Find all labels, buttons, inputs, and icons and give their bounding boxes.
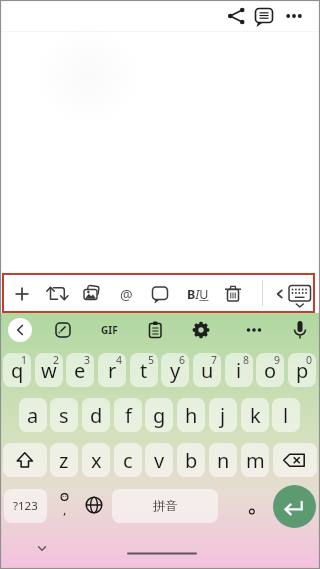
staticText: c <box>123 447 133 474</box>
button[interactable]: GIF <box>97 322 121 338</box>
button[interactable] <box>273 443 317 477</box>
button[interactable]: 拼音 <box>112 489 218 523</box>
button[interactable] <box>288 318 312 342</box>
button[interactable] <box>221 282 245 306</box>
button[interactable] <box>224 4 248 28</box>
staticText: k <box>250 402 261 429</box>
button[interactable] <box>252 4 276 28</box>
button[interactable]: r <box>98 353 126 387</box>
button[interactable]: q <box>3 353 31 387</box>
button[interactable]: t <box>130 353 158 387</box>
button[interactable]: o <box>256 353 284 387</box>
button[interactable]: c <box>114 443 142 477</box>
staticText: 3 <box>84 353 91 367</box>
button[interactable]: m <box>241 443 269 477</box>
button[interactable]: h <box>177 398 205 432</box>
staticText: z <box>59 447 69 474</box>
staticText: p <box>296 357 309 384</box>
staticText: 6 <box>179 353 186 367</box>
button[interactable] <box>79 282 103 306</box>
button[interactable]: a <box>19 398 47 432</box>
staticText: 5 <box>148 353 155 367</box>
staticText: BIU <box>187 286 209 303</box>
button[interactable] <box>148 282 172 306</box>
staticText: , <box>63 500 67 518</box>
staticText: v <box>154 447 165 474</box>
button[interactable]: g <box>145 398 173 432</box>
button[interactable]: x <box>82 443 110 477</box>
staticText: j <box>220 402 226 429</box>
staticText: 9 <box>274 353 281 367</box>
staticText: n <box>217 447 230 474</box>
button[interactable]: w <box>35 353 63 387</box>
button[interactable]: i <box>225 353 253 387</box>
staticText: o <box>264 357 277 384</box>
button[interactable]: e <box>66 353 94 387</box>
button[interactable]: u <box>193 353 221 387</box>
staticText: b <box>185 447 198 474</box>
button[interactable] <box>189 318 213 342</box>
button[interactable]: v <box>145 443 173 477</box>
staticText: r <box>108 357 117 384</box>
button[interactable]: n <box>209 443 237 477</box>
staticText: y <box>170 357 181 384</box>
staticText: l <box>283 402 289 429</box>
staticText: f <box>125 402 132 429</box>
button[interactable] <box>45 282 69 306</box>
button[interactable]: j <box>209 398 237 432</box>
staticText: 7 <box>211 353 218 367</box>
staticText: q <box>11 357 24 384</box>
staticText: 0 <box>306 353 313 367</box>
button[interactable]: y <box>161 353 189 387</box>
button[interactable] <box>3 443 47 477</box>
button[interactable] <box>282 4 306 28</box>
staticText: 拼音 <box>153 498 178 514</box>
button[interactable]: b <box>177 443 205 477</box>
button[interactable]: z <box>50 443 78 477</box>
staticText: 8 <box>243 353 250 367</box>
button[interactable]: p <box>288 353 316 387</box>
button[interactable]: , <box>52 489 77 523</box>
button[interactable]: k <box>241 398 269 432</box>
button[interactable]: s <box>50 398 78 432</box>
staticText: d <box>90 402 103 429</box>
staticText: s <box>59 402 69 429</box>
staticText: e <box>74 357 86 384</box>
staticText: 4 <box>116 353 123 367</box>
button[interactable] <box>30 540 54 556</box>
staticText: 2 <box>53 353 60 367</box>
staticText: ?123 <box>13 498 38 514</box>
staticText: t <box>140 357 148 384</box>
button[interactable] <box>273 485 316 528</box>
staticText: u <box>201 357 214 384</box>
button[interactable] <box>272 282 314 308</box>
staticText: 1 <box>21 353 28 367</box>
staticText: h <box>185 402 198 429</box>
staticText: g <box>153 402 166 429</box>
button[interactable]: d <box>82 398 110 432</box>
staticText: m <box>246 447 265 474</box>
button[interactable] <box>10 282 34 306</box>
staticText: x <box>91 447 102 474</box>
staticText: i <box>236 357 242 384</box>
button[interactable] <box>238 489 266 523</box>
button[interactable] <box>51 318 75 342</box>
staticText: w <box>41 357 57 384</box>
staticText: @ <box>120 285 133 304</box>
button[interactable]: @ <box>116 284 136 304</box>
button[interactable] <box>143 318 167 342</box>
button[interactable] <box>8 318 32 342</box>
staticText: GIF <box>101 323 118 337</box>
button[interactable]: f <box>114 398 142 432</box>
button[interactable] <box>242 318 266 342</box>
staticText: a <box>27 402 39 429</box>
button[interactable]: l <box>272 398 300 432</box>
button[interactable]: ?123 <box>4 489 47 523</box>
button[interactable] <box>80 489 108 522</box>
button[interactable] <box>120 546 204 562</box>
button[interactable]: BIU <box>184 284 211 304</box>
